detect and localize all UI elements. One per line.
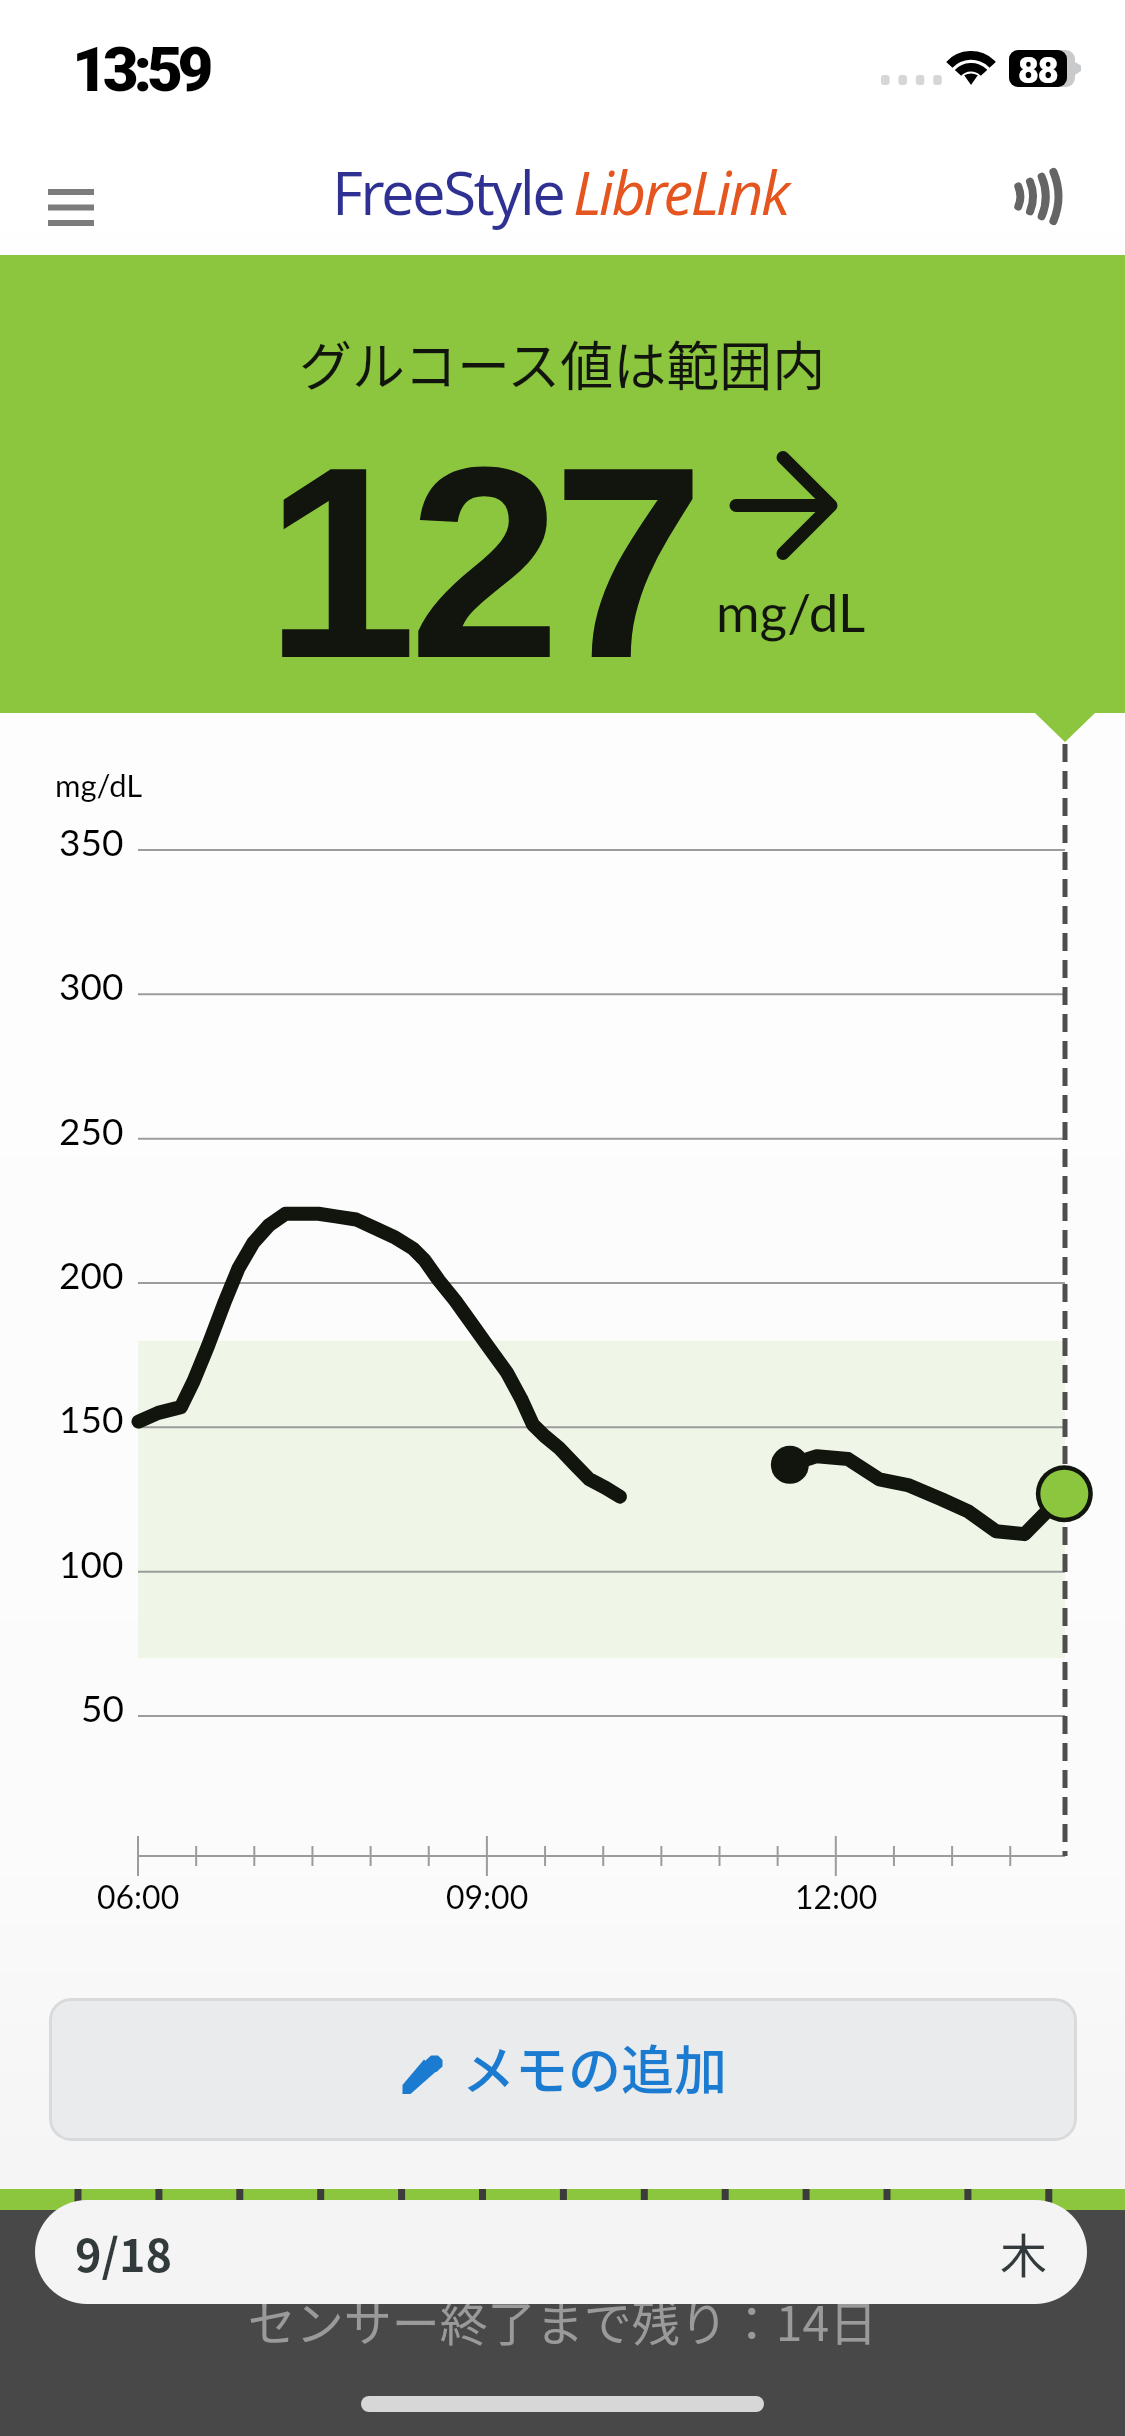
staticText: 13:59 xyxy=(72,33,209,106)
staticText: 250 xyxy=(59,1108,124,1152)
staticText: 09:00 xyxy=(446,1877,529,1915)
staticText: 9/18 xyxy=(75,2220,173,2285)
staticText: mg/dL xyxy=(55,766,143,803)
staticText: 150 xyxy=(59,1396,124,1440)
button[interactable]: 9/18 xyxy=(35,2200,1087,2304)
staticText: FreeStyle xyxy=(332,151,564,233)
staticText: グルコース値は範囲内 xyxy=(299,325,826,402)
staticText: センサー終了まで残り：14日 xyxy=(0,2285,1125,2355)
staticText: 06:00 xyxy=(97,1877,180,1915)
staticText: 12:00 xyxy=(795,1877,878,1915)
staticText: 木 xyxy=(1000,2218,1047,2286)
staticText: 350 xyxy=(59,819,124,863)
staticText: mg/dL xyxy=(716,580,866,644)
staticText: 200 xyxy=(59,1252,124,1296)
button[interactable]: Scan sensor xyxy=(933,132,1061,260)
staticText: メモの追加 xyxy=(462,2029,727,2106)
staticText: LibreLink xyxy=(573,151,788,233)
button[interactable]: Menu xyxy=(11,141,131,273)
staticText: 50 xyxy=(81,1685,124,1729)
staticText: 88 xyxy=(1018,50,1058,87)
staticText: 100 xyxy=(59,1541,124,1585)
staticText: 300 xyxy=(59,963,124,1007)
staticText: 127 xyxy=(265,410,697,715)
button[interactable]: メモの追加 xyxy=(49,1998,1077,2141)
